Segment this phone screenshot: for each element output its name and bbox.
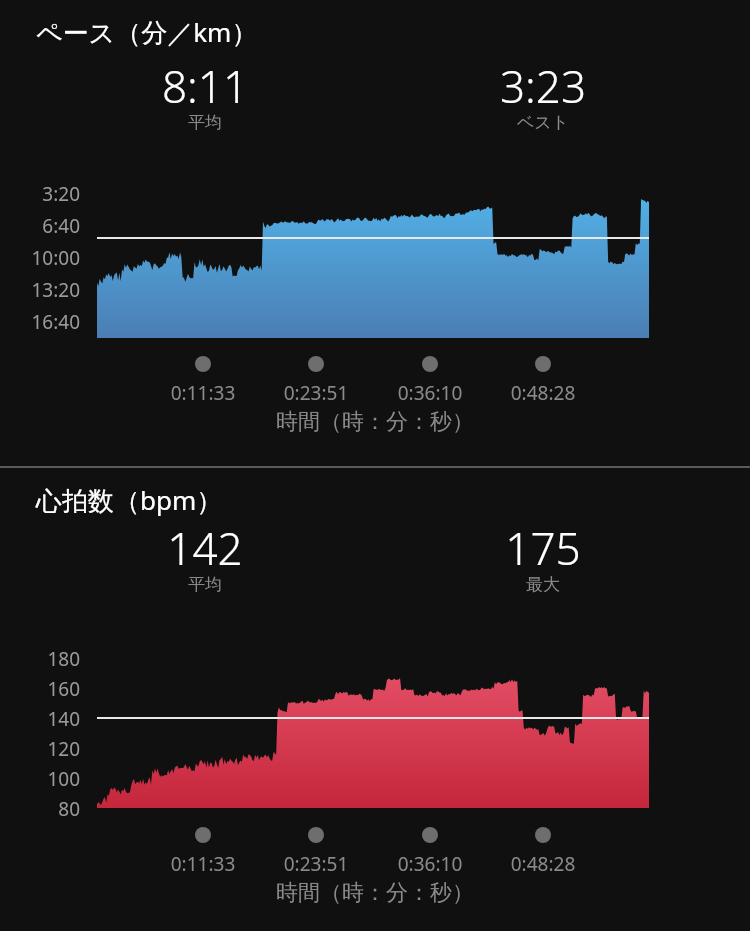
staticText: 140: [0, 706, 80, 732]
button[interactable]: ペース（分／km）: [36, 14, 258, 50]
staticText: 0:23:51: [241, 380, 391, 406]
staticText: 120: [0, 736, 80, 762]
other: Activity pace and heart rate charts: [0, 0, 750, 931]
staticText: 平均: [105, 574, 305, 595]
staticText: 142: [105, 518, 305, 574]
staticText: 3:20: [0, 181, 80, 207]
staticText: 3:23: [443, 56, 643, 112]
staticText: 0:11:33: [128, 380, 278, 406]
staticText: 0:48:28: [468, 380, 618, 406]
staticText: 175: [443, 518, 643, 574]
staticText: 心拍数（bpm）: [36, 482, 223, 518]
staticText: ベスト: [443, 112, 643, 133]
staticText: 100: [0, 766, 80, 792]
staticText: 0:36:10: [355, 380, 505, 406]
staticText: 80: [0, 796, 80, 822]
staticText: 0:36:10: [355, 851, 505, 877]
staticText: 10:00: [0, 245, 80, 271]
staticText: 8:11: [105, 56, 305, 112]
staticText: 最大: [443, 574, 643, 595]
button[interactable]: 心拍数（bpm）: [36, 482, 223, 518]
staticText: 13:20: [0, 277, 80, 303]
staticText: ペース（分／km）: [36, 14, 258, 50]
staticText: 時間（時：分：秒）: [175, 408, 575, 436]
staticText: 平均: [105, 112, 305, 133]
staticText: 0:11:33: [128, 851, 278, 877]
staticText: 0:23:51: [241, 851, 391, 877]
staticText: 160: [0, 676, 80, 702]
staticText: 6:40: [0, 213, 80, 239]
staticText: 時間（時：分：秒）: [175, 879, 575, 907]
staticText: 16:40: [0, 309, 80, 335]
staticText: 0:48:28: [468, 851, 618, 877]
staticText: 180: [0, 646, 80, 672]
